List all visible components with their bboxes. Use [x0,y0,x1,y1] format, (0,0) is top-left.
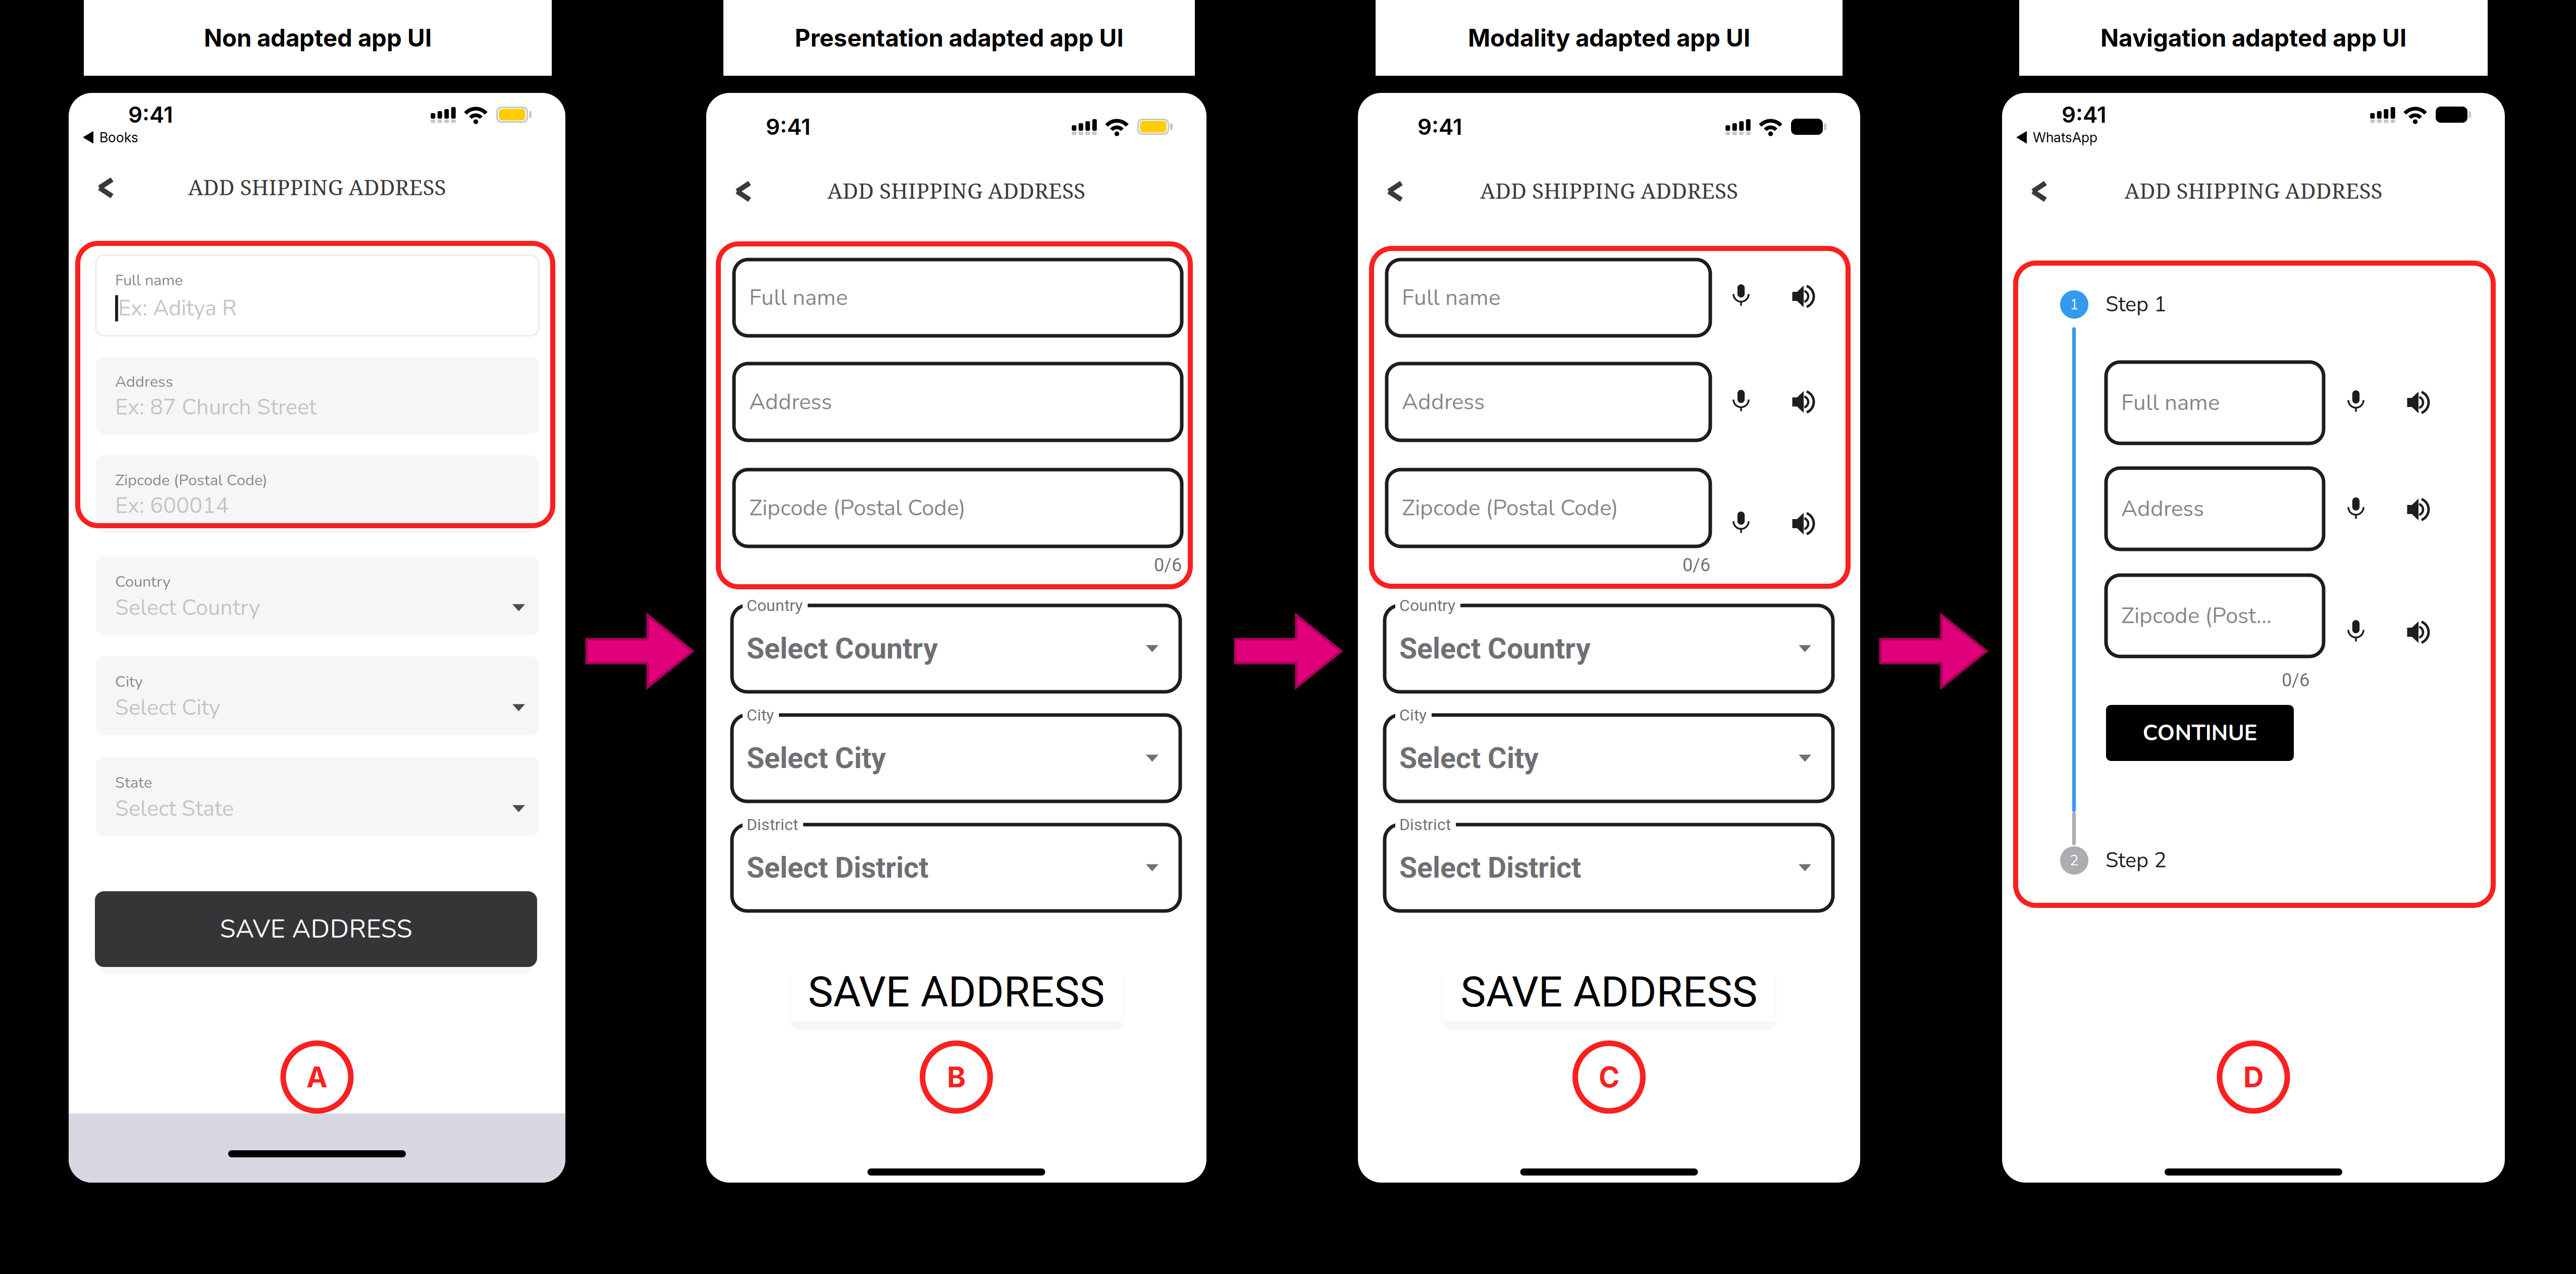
button[interactable]: Read aloud [1782,380,1825,424]
staticText: 2 [2070,850,2079,871]
staticText: Select District [1399,851,1581,885]
staticText: CONTINUE [2143,718,2257,748]
button[interactable]: Zipcode (Postal Code) [1387,470,1710,546]
staticText: Zipcode (Postal Code) [749,493,966,523]
staticText: 9:41 [1417,113,1462,140]
button[interactable]: Country [96,556,539,635]
button[interactable]: Dictate [1719,380,1763,424]
button[interactable]: Zipcode (Postal Code) [734,470,1182,546]
staticText: District [1399,815,1451,834]
staticText: Full name [2121,388,2220,418]
staticText: Non adapted app UI [204,23,432,52]
staticText: State [115,772,152,793]
button[interactable]: Select District [1385,825,1833,911]
staticText: Zipcode (Post... [2121,601,2272,631]
staticText: 0/6 [2282,670,2309,691]
staticText: City [1399,706,1427,724]
button[interactable]: Dictate [1719,502,1763,545]
staticText: Full name [749,283,848,313]
staticText: Address [2121,494,2204,524]
button[interactable]: Select Country [1385,605,1833,692]
button[interactable]: Full name [2106,362,2324,443]
staticText: Address [1402,387,1485,417]
button[interactable]: State [96,757,539,836]
button[interactable]: Select District [732,825,1180,911]
staticText: Zipcode (Postal Code) [1402,493,1618,523]
staticText: Select State [115,794,234,824]
staticText: 0/6 [1683,554,1710,576]
staticText: Address [115,371,173,392]
button[interactable]: Read aloud [2397,488,2440,531]
staticText: Address [749,387,832,417]
button[interactable]: Back [89,165,154,209]
button[interactable]: Address [96,357,539,434]
staticText: City [115,671,143,692]
staticText: ADD SHIPPING ADDRESS [2124,176,2382,205]
button[interactable]: Read aloud [2397,610,2440,654]
staticText: Ex: Aditya R [118,293,237,323]
button[interactable]: Back [2022,168,2088,213]
button[interactable]: Full name [1387,260,1710,336]
staticText: Books [99,129,138,146]
staticText: Select Country [115,593,260,623]
button[interactable]: Dictate [2334,610,2378,654]
staticText: Ex: 600014 [115,491,229,521]
staticText: Country [747,596,803,615]
staticText: Zipcode (Postal Code) [115,470,268,491]
button[interactable]: Dictate [2334,381,2378,424]
staticText: Select City [115,693,220,723]
button[interactable]: Back [726,168,792,213]
staticText: 9:41 [766,113,811,140]
staticText: Ex: 87 Church Street [115,392,317,422]
button[interactable]: Address [2106,468,2324,549]
staticText: Step 1 [2106,290,2167,319]
button[interactable]: Back [1378,168,1444,213]
staticText: 9:41 [2062,101,2107,128]
staticText: Select City [747,741,886,775]
staticText: District [747,815,798,834]
button[interactable]: Select City [732,715,1180,801]
button[interactable]: Select Country [732,605,1180,692]
button[interactable]: SAVE ADDRESS [95,891,537,967]
button[interactable]: Zipcode (Postal Code) [96,455,539,533]
staticText: D [2243,1060,2264,1094]
button[interactable]: Select City [1385,715,1833,801]
button[interactable]: Full name [96,255,539,336]
staticText: SAVE ADDRESS [220,912,412,947]
staticText: B [947,1060,966,1094]
staticText: 1 [2070,294,2079,315]
staticText: Full name [115,270,183,291]
button[interactable]: Read aloud [1782,275,1825,318]
button[interactable]: City [96,656,539,735]
button[interactable]: Read aloud [1782,502,1825,545]
button[interactable]: CONTINUE [2106,705,2294,761]
staticText: Select Country [1399,632,1591,666]
staticText: ADD SHIPPING ADDRESS [827,176,1085,205]
button[interactable]: Dictate [1719,275,1763,318]
staticText: Select City [1399,741,1539,775]
staticText: Select District [747,851,928,885]
button[interactable]: Address [1387,364,1710,440]
staticText: A [306,1060,328,1094]
staticText: SAVE ADDRESS [1461,967,1757,1017]
staticText: Navigation adapted app UI [2100,23,2406,52]
staticText: City [747,706,774,724]
staticText: SAVE ADDRESS [808,967,1105,1017]
staticText: Country [1399,596,1455,615]
button[interactable]: SAVE ADDRESS [1443,962,1775,1022]
button[interactable]: Dictate [2334,488,2378,531]
staticText: Step 2 [2106,846,2167,875]
button[interactable]: Full name [734,260,1182,336]
staticText: ADD SHIPPING ADDRESS [188,172,446,201]
button[interactable]: Zipcode (Post... [2106,575,2324,656]
staticText: Full name [1402,283,1500,313]
staticText: Modality adapted app UI [1468,23,1750,52]
staticText: C [1599,1060,1619,1094]
button[interactable]: Address [734,364,1182,440]
staticText: Presentation adapted app UI [795,23,1123,52]
staticText: WhatsApp [2033,129,2097,146]
button[interactable]: SAVE ADDRESS [790,962,1122,1022]
button[interactable]: Read aloud [2397,381,2440,424]
staticText: ADD SHIPPING ADDRESS [1480,176,1738,205]
staticText: Select Country [747,632,938,666]
